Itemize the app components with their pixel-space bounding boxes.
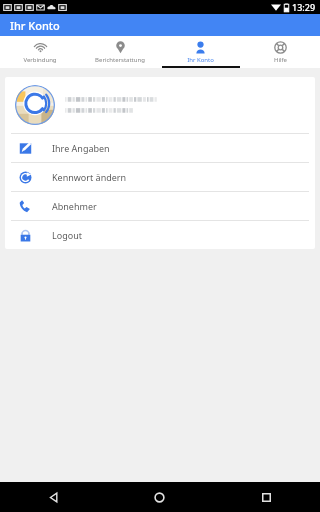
staticText: Berichterstattung [95, 56, 145, 64]
staticText: Abnehmer [52, 200, 97, 212]
staticText: Verbindung [23, 56, 57, 64]
button[interactable]: Logout [5, 221, 315, 249]
button[interactable]: Abnehmer [5, 192, 315, 220]
button[interactable]: Berichterstattung [80, 36, 160, 68]
button[interactable]: Back [0, 482, 106, 512]
staticText: Ihr Konto [10, 18, 60, 33]
staticText: Kennwort ändern [52, 171, 127, 183]
staticText: Ihre Angaben [52, 142, 110, 154]
button[interactable]: Ihr Konto [160, 36, 240, 68]
staticText: Ihr Konto [187, 56, 214, 64]
staticText: Hilfe [274, 56, 287, 64]
button[interactable]: Ihre Angaben [5, 134, 315, 162]
button[interactable]: Home [106, 482, 213, 512]
button[interactable] [5, 77, 315, 133]
button[interactable]: Kennwort ändern [5, 163, 315, 191]
button[interactable]: Recent apps [213, 482, 320, 512]
button[interactable]: Verbindung [0, 36, 80, 68]
button[interactable]: Hilfe [240, 36, 320, 68]
staticText: 13:29 [292, 1, 316, 13]
staticText: Logout [52, 229, 82, 241]
